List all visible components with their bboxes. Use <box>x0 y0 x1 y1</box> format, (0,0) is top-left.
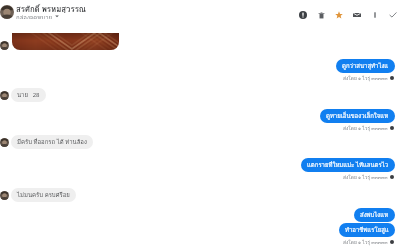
button[interactable]: ดูทายเอ็นของวเล็กใจแห <box>320 109 395 123</box>
button[interactable]: มีครับ ที่ออกรถ ได้ ท่านล้อง <box>11 135 93 149</box>
button[interactable]: Delete <box>312 6 330 24</box>
button[interactable]: More options <box>366 6 384 24</box>
staticText: สรศักดิ์ พรหมสุวรรณ <box>16 3 87 13</box>
staticText: ทำอาชีพแรโยสูแ <box>345 225 389 235</box>
staticText: ส่งโดย ๑ ไวรุ่ ๓๓๓๓๓ <box>343 173 388 181</box>
button[interactable]: Done <box>384 6 400 24</box>
button[interactable]: ส่งพบไงแห <box>354 208 395 222</box>
button[interactable] <box>12 33 119 50</box>
button[interactable]: ทำอาชีพแรโยสูแ <box>339 223 395 237</box>
staticText: แตกรายที่ใหมแม่ะ ไห้แลนตรไว <box>307 160 389 170</box>
button[interactable]: แตกรายที่ใหมแม่ะ ไห้แลนตรไว <box>301 158 395 172</box>
staticText: ส่งโดย ๑ ไวรุ่ ๓๓๓๓๓ <box>343 74 388 82</box>
staticText: นาย 28 <box>17 90 40 100</box>
button[interactable]: นาย 28 <box>11 88 46 102</box>
staticText: ไม่มนครับ ครบศรีอย <box>17 190 70 200</box>
button[interactable]: Star <box>330 6 348 24</box>
staticText: ส่งโดย ๑ ไวรุ่ ๓๓๓๓๓ <box>343 124 388 132</box>
button[interactable]: ดูกว่าสนาสุทำไงแ <box>336 59 395 73</box>
staticText: ดูทายเอ็นของวเล็กใจแห <box>326 111 389 121</box>
staticText: ดูกว่าสนาสุทำไงแ <box>342 61 389 71</box>
staticText: กล่องจดหมาย <box>16 13 53 19</box>
button[interactable]: Archive <box>294 6 312 24</box>
staticText: มีครับ ที่ออกรถ ได้ ท่านล้อง <box>17 137 87 147</box>
button[interactable]: ไม่มนครับ ครบศรีอย <box>11 188 76 202</box>
staticText: ส่งโดย ๑ ไวรุ่ ๓๓๓๓๓ <box>343 238 388 246</box>
staticText: ส่งพบไงแห <box>360 210 389 220</box>
button[interactable]: Mark unread <box>348 6 366 24</box>
